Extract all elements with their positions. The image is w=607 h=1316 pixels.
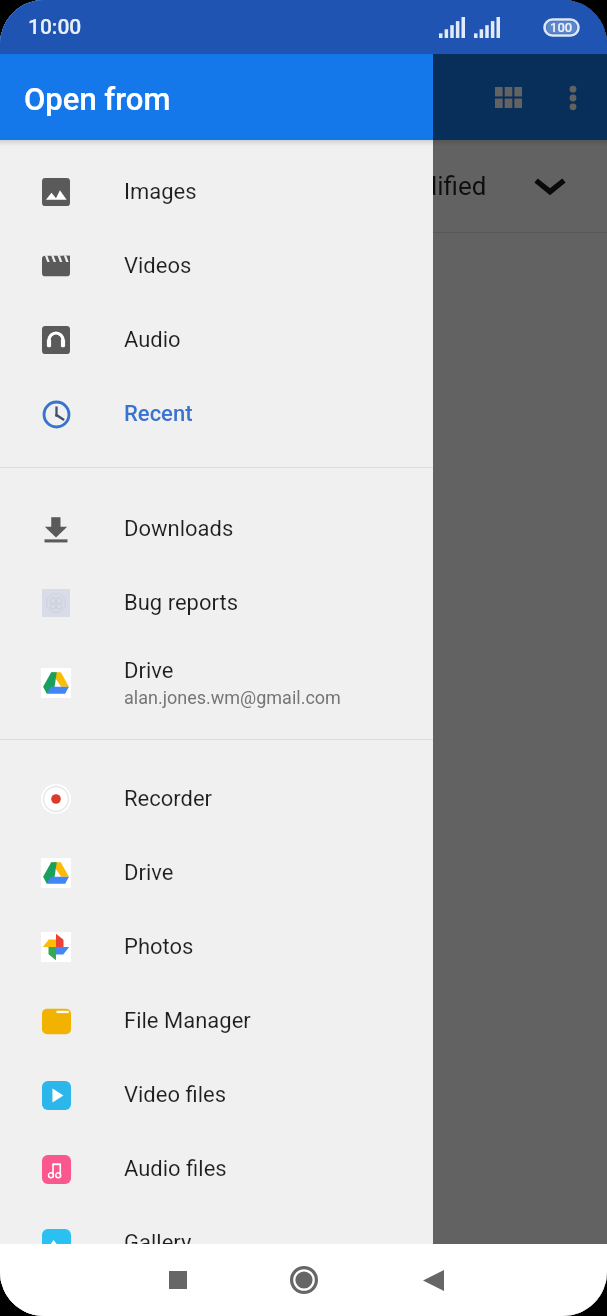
staticText: Open from: [24, 81, 171, 117]
button[interactable]: Back: [405, 1252, 461, 1308]
staticText: File Manager: [124, 1008, 251, 1034]
staticText: alan.jones.wm@gmail.com: [124, 687, 341, 708]
staticText: Gallery: [124, 1230, 192, 1256]
staticText: Audio files: [124, 1156, 227, 1182]
staticText: Images: [124, 179, 197, 205]
staticText: Recorder: [124, 786, 213, 812]
button[interactable]: Videos: [0, 229, 433, 303]
staticText: 10:00: [28, 15, 82, 40]
button[interactable]: Drive: [0, 836, 433, 910]
button[interactable]: File Manager: [0, 984, 433, 1058]
button[interactable]: Downloads: [0, 492, 433, 566]
button[interactable]: Grid view: [479, 68, 538, 127]
staticText: Modified: [385, 171, 487, 201]
button[interactable]: Recent: [0, 377, 433, 451]
button[interactable]: Recents: [150, 1252, 206, 1308]
staticText: Recent: [124, 401, 193, 427]
button[interactable]: Recorder: [0, 762, 433, 836]
button[interactable]: Gallery: [0, 1206, 433, 1280]
staticText: Drive: [124, 658, 174, 684]
staticText: Video files: [124, 1082, 226, 1108]
button[interactable]: Bug reports: [0, 566, 433, 640]
staticText: Bug reports: [124, 590, 239, 616]
button[interactable]: Images: [0, 155, 433, 229]
button[interactable]: Audio files: [0, 1132, 433, 1206]
staticText: Audio: [124, 327, 181, 353]
button[interactable]: Audio: [0, 303, 433, 377]
button[interactable]: Drive: [0, 640, 433, 726]
staticText: Videos: [124, 253, 192, 279]
staticText: 100: [550, 20, 573, 35]
button[interactable]: Home: [276, 1252, 332, 1308]
staticText: Downloads: [124, 516, 234, 542]
button[interactable]: More options: [543, 68, 602, 127]
button[interactable]: Video files: [0, 1058, 433, 1132]
staticText: Drive: [124, 860, 174, 886]
staticText: Photos: [124, 934, 194, 960]
button[interactable]: Photos: [0, 910, 433, 984]
